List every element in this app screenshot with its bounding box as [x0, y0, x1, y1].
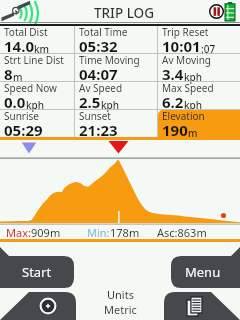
button[interactable]: Time Moving	[75, 54, 157, 81]
staticText: Min:	[87, 225, 110, 240]
staticText: :07	[201, 42, 216, 56]
button[interactable]: Max Speed	[158, 82, 240, 109]
staticText: 178m	[110, 225, 140, 240]
button[interactable]: Trip Reset	[158, 26, 240, 53]
staticText: m	[13, 70, 23, 84]
staticText: 10:01	[162, 36, 201, 56]
staticText: Sunset	[79, 109, 111, 123]
staticText: 04:07	[79, 64, 118, 84]
staticText: kph	[184, 98, 203, 112]
button[interactable]: Start	[0, 247, 74, 288]
staticText: Av Speed	[79, 81, 123, 95]
staticText: Elevation	[162, 110, 205, 123]
staticText: Av Moving	[162, 53, 211, 67]
staticText: kph	[101, 98, 120, 112]
staticText: Metric	[104, 302, 137, 317]
staticText: Time Moving	[79, 53, 140, 67]
staticText: Speed Now	[4, 81, 57, 95]
staticText: Sunrise	[4, 109, 39, 123]
staticText: 909m	[31, 225, 61, 240]
staticText: 6.2	[162, 92, 184, 112]
staticText: Max:	[6, 225, 31, 240]
staticText: Total Dist	[4, 25, 48, 39]
staticText: Units	[107, 287, 134, 302]
staticText: 0.0	[4, 92, 26, 112]
staticText: 190	[162, 120, 188, 137]
button[interactable]: Sunset	[75, 110, 157, 137]
button[interactable]: Elevation	[158, 110, 240, 137]
staticText: 2.5	[79, 92, 101, 112]
staticText: Strt Line Dist	[4, 53, 64, 67]
staticText: 14.0	[4, 36, 34, 56]
button[interactable]: Total Time	[75, 26, 157, 53]
button[interactable]: Av Speed	[75, 82, 157, 109]
button[interactable]: Pages	[176, 292, 212, 320]
staticText: 05:32	[79, 36, 118, 56]
button[interactable]: Menu	[166, 247, 240, 288]
other: Battery	[225, 2, 235, 21]
button[interactable]: Sunrise	[0, 110, 74, 137]
button[interactable]: Speed Now	[0, 82, 74, 109]
staticText: 3.4	[162, 64, 184, 84]
button[interactable]: Av Moving	[158, 54, 240, 81]
staticText: Start	[22, 263, 52, 281]
staticText: Max Speed	[162, 81, 214, 95]
button[interactable]: Total Dist	[0, 26, 74, 53]
staticText: Asc:863m	[157, 225, 207, 240]
staticText: kph	[184, 70, 203, 84]
button[interactable]: Record track	[20, 292, 76, 320]
staticText: Total Time	[79, 25, 128, 39]
button[interactable]: Paused	[209, 4, 224, 19]
staticText: km	[34, 42, 50, 56]
staticText: 21:23	[79, 120, 118, 140]
staticText: Menu	[185, 263, 221, 281]
staticText: 05:29	[4, 120, 43, 140]
staticText: Trip Reset	[162, 25, 209, 39]
staticText: m	[188, 126, 198, 137]
staticText: 8	[4, 64, 13, 84]
staticText: kph	[26, 98, 45, 112]
staticText: TRIP LOG	[94, 4, 154, 22]
button[interactable]: Strt Line Dist	[0, 54, 74, 81]
